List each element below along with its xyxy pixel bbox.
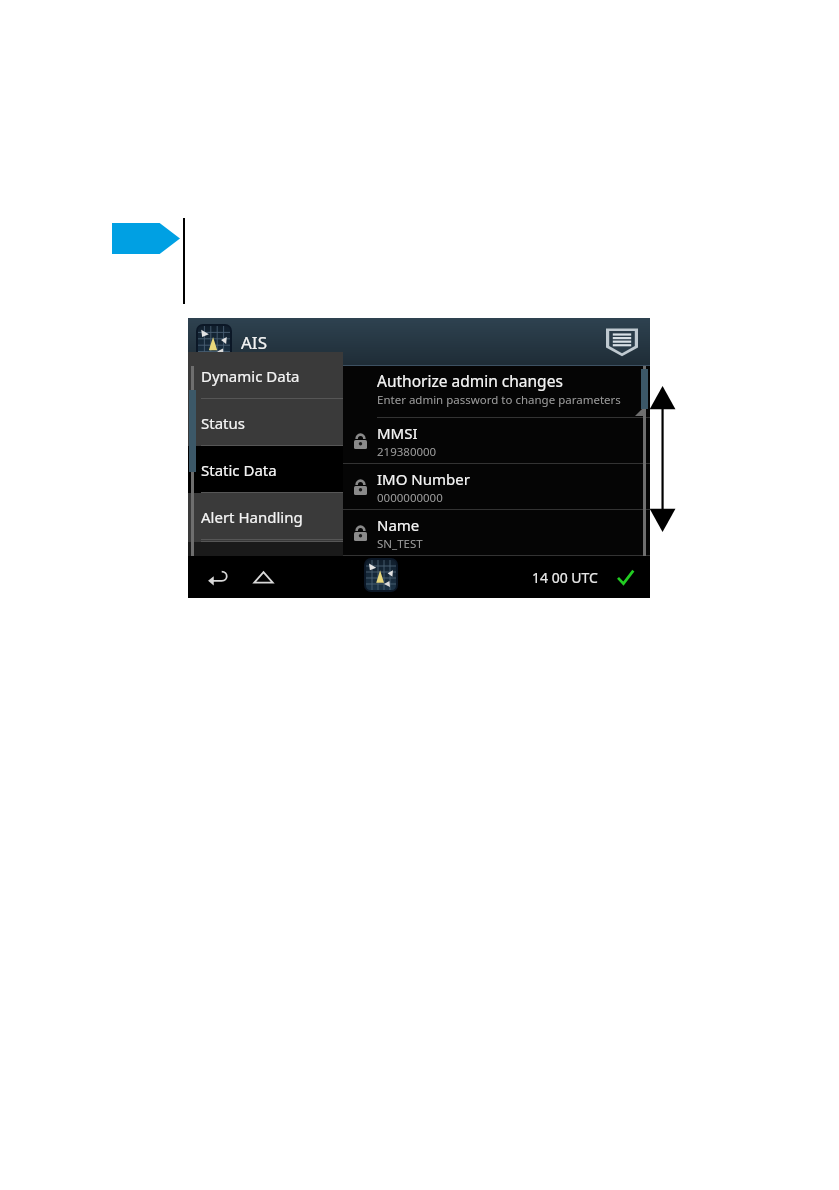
- button[interactable]: AIS application: [364, 558, 398, 592]
- button[interactable]: IMO Number: [343, 464, 650, 510]
- staticText: Alert Handling: [201, 507, 303, 527]
- button[interactable]: Alert Handling: [188, 493, 343, 540]
- button[interactable]: Dynamic Data: [188, 352, 343, 399]
- staticText: 0000000000: [377, 490, 443, 506]
- staticText: Inland Waterw.: [201, 540, 308, 542]
- button[interactable]: AIS: [196, 324, 232, 360]
- staticText: IMO Number: [377, 469, 470, 489]
- staticText: Name: [377, 515, 420, 535]
- staticText: Authorize admin changes: [377, 370, 563, 391]
- staticText: Enter admin password to change parameter…: [377, 392, 621, 408]
- staticText: SN_TEST: [377, 536, 423, 552]
- staticText: 219380000: [377, 444, 437, 460]
- button[interactable]: Status: [188, 399, 343, 446]
- button[interactable]: Home: [246, 560, 280, 594]
- staticText: Dynamic Data: [201, 366, 300, 386]
- staticText: Static Data: [201, 460, 277, 480]
- staticText: 14 00 UTC: [532, 568, 598, 587]
- staticText: AIS: [241, 331, 267, 354]
- button[interactable]: Authorize admin changes: [343, 366, 650, 418]
- staticText: Status: [201, 413, 245, 433]
- button[interactable]: MMSI: [343, 418, 650, 464]
- button[interactable]: Back: [200, 560, 234, 594]
- button[interactable]: Status OK: [612, 564, 638, 590]
- button[interactable]: Menu: [602, 325, 642, 359]
- staticText: MMSI: [377, 423, 418, 443]
- button[interactable]: Name: [343, 510, 650, 556]
- button[interactable]: Inland Waterw.: [188, 540, 343, 542]
- button[interactable]: Static Data: [188, 446, 343, 493]
